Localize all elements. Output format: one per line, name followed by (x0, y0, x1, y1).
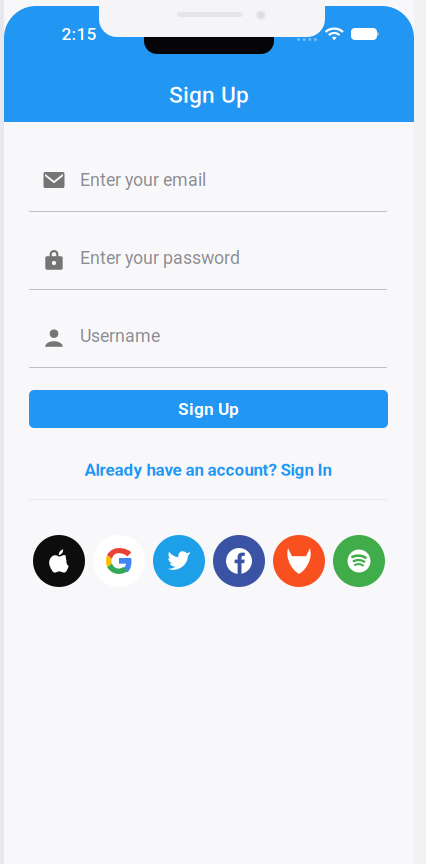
staticText: Enter your password (80, 248, 240, 268)
staticText: Enter your email (80, 170, 206, 190)
button[interactable]: Sign in with Google (93, 535, 145, 587)
staticText: Sign Up (169, 82, 249, 108)
button[interactable]: Sign Up (29, 390, 388, 428)
button[interactable]: Sign in with Apple (33, 535, 85, 587)
staticText: Sign Up (178, 399, 239, 419)
button[interactable]: Sign in with Facebook (213, 535, 265, 587)
staticText: 2:15 (61, 24, 96, 44)
staticText: Username (80, 326, 160, 346)
button[interactable]: Already have an account? Sign In (29, 455, 387, 485)
staticText: Already have an account? Sign In (84, 460, 331, 480)
button[interactable]: Sign in with Twitter (153, 535, 205, 587)
button[interactable]: Sign in with Spotify (333, 535, 385, 587)
button[interactable]: Sign in with GitLab (273, 535, 325, 587)
